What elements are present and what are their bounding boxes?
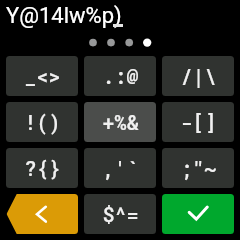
button[interactable]: ?{} <box>6 148 78 188</box>
button[interactable]: !() <box>6 102 78 142</box>
button[interactable]: /|\ <box>162 56 234 96</box>
button[interactable]: $^= <box>84 194 156 234</box>
staticText: !() <box>24 109 61 135</box>
staticText: +%& <box>102 109 139 135</box>
button[interactable]: _<> <box>6 56 78 96</box>
button[interactable]: -[] <box>162 102 234 142</box>
button[interactable]: .:@ <box>84 56 156 96</box>
staticText: -[] <box>180 109 217 135</box>
staticText: ,'` <box>102 155 139 181</box>
staticText: /|\ <box>180 63 217 89</box>
staticText: .:@ <box>102 63 139 89</box>
button[interactable]: +%& <box>84 102 156 142</box>
staticText: _<> <box>24 63 61 89</box>
staticText: ;"~ <box>180 155 217 181</box>
staticText: ?{} <box>24 155 61 181</box>
button[interactable]: ,'` <box>84 148 156 188</box>
button[interactable]: Back <box>6 194 78 234</box>
button[interactable]: Done <box>162 194 234 234</box>
button[interactable]: ;"~ <box>162 148 234 188</box>
staticText: $^= <box>102 201 139 227</box>
staticText: Y@14lw%p) <box>6 3 122 29</box>
